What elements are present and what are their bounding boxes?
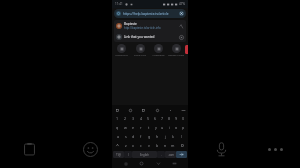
staticText: r: [140, 125, 142, 130]
button[interactable]: 2: [121, 114, 129, 123]
button[interactable]: Toolbar 0: [114, 107, 120, 113]
staticText: e: [132, 125, 135, 130]
button[interactable]: Backspace: [177, 141, 187, 150]
button[interactable]: Screenshots: [112, 44, 131, 57]
staticText: 11:41: [115, 2, 123, 6]
button[interactable]: Hide keyboard: [171, 160, 178, 167]
staticText: v: [148, 143, 150, 148]
staticText: y: [155, 125, 157, 130]
button[interactable]: Home: [138, 160, 145, 167]
staticText: /: [128, 153, 129, 157]
staticText: m: [171, 143, 175, 148]
button[interactable]: h: [153, 132, 161, 141]
button[interactable]: Toolbar 2: [140, 107, 146, 113]
button[interactable]: https://help.bapteste.tv/article: [114, 9, 186, 18]
button[interactable]: k: [169, 132, 177, 141]
staticText: j: [165, 134, 166, 139]
button[interactable]: [185, 45, 188, 54]
button[interactable]: Recents: [122, 160, 129, 167]
button[interactable]: u: [159, 123, 166, 132]
staticText: 1: [116, 116, 119, 121]
button[interactable]: m: [169, 141, 177, 150]
button[interactable]: Voice input: [208, 136, 234, 162]
button[interactable]: g: [145, 132, 153, 141]
staticText: 6: [154, 116, 157, 121]
button[interactable]: d: [129, 132, 137, 141]
button[interactable]: Space: [132, 151, 157, 158]
button[interactable]: .com: [165, 151, 176, 158]
staticText: o: [175, 125, 178, 130]
button[interactable]: Clear: [179, 11, 184, 16]
staticText: 5: [147, 116, 150, 121]
button[interactable]: w: [121, 123, 129, 132]
button[interactable]: 0: [180, 114, 187, 123]
staticText: x: [132, 143, 134, 148]
button[interactable]: x: [129, 141, 137, 150]
staticText: p: [182, 125, 185, 130]
button[interactable]: Clipboard: [18, 138, 40, 160]
staticText: 47%: [179, 2, 185, 6]
staticText: Share a link: [134, 54, 146, 57]
button[interactable]: More options: [262, 136, 288, 162]
button[interactable]: ?1@: [113, 151, 124, 158]
button[interactable]: Go: [176, 151, 187, 158]
button[interactable]: 8: [166, 114, 173, 123]
button[interactable]: 7: [159, 114, 166, 123]
button[interactable]: e: [129, 123, 137, 132]
button[interactable]: i: [166, 123, 173, 132]
button[interactable]: y: [152, 123, 159, 132]
staticText: t: [148, 125, 150, 130]
staticText: Accessibility: [152, 54, 165, 57]
staticText: q: [116, 125, 119, 130]
button[interactable]: Toolbar 4: [167, 107, 173, 113]
button[interactable]: p: [180, 123, 187, 132]
button[interactable]: Doodles I Draw: [167, 44, 185, 57]
staticText: .com: [168, 153, 174, 157]
button[interactable]: n: [161, 141, 169, 150]
staticText: g: [148, 134, 151, 139]
button[interactable]: o: [173, 123, 180, 132]
button[interactable]: 3: [129, 114, 137, 123]
button[interactable]: a: [115, 132, 122, 141]
button[interactable]: 6: [152, 114, 159, 123]
staticText: Doodles I Draw: [168, 54, 184, 57]
button[interactable]: Toolbar 5: [180, 107, 186, 113]
button[interactable]: c: [137, 141, 145, 150]
staticText: u: [161, 125, 164, 130]
staticText: z: [125, 143, 127, 148]
staticText: d: [132, 134, 135, 139]
button[interactable]: Toolbar 3: [154, 107, 160, 113]
button[interactable]: Shift: [113, 141, 122, 150]
button[interactable]: s: [122, 132, 129, 141]
button[interactable]: Preview: [178, 34, 184, 40]
staticText: f: [140, 134, 142, 139]
button[interactable]: t: [145, 123, 152, 132]
button[interactable]: r: [137, 123, 145, 132]
button[interactable]: Insert: [178, 23, 184, 29]
staticText: .: [161, 153, 162, 157]
staticText: 3: [132, 116, 135, 121]
staticText: 8: [168, 116, 171, 121]
button[interactable]: Emoji: [78, 137, 102, 161]
button[interactable]: q: [113, 123, 121, 132]
button[interactable]: 5: [145, 114, 152, 123]
button[interactable]: l: [177, 132, 185, 141]
staticText: k: [172, 134, 174, 139]
button[interactable]: Share a link: [131, 44, 149, 57]
button[interactable]: b: [153, 141, 161, 150]
button[interactable]: Link that you wanted: [114, 31, 186, 42]
button[interactable]: j: [161, 132, 169, 141]
button[interactable]: 1: [113, 114, 121, 123]
button[interactable]: 4: [137, 114, 145, 123]
button[interactable]: 9: [173, 114, 180, 123]
staticText: 2: [124, 116, 127, 121]
button[interactable]: f: [137, 132, 145, 141]
button[interactable]: z: [122, 141, 129, 150]
button[interactable]: Bapteste: [114, 20, 186, 31]
button[interactable]: Accessibility: [149, 44, 167, 57]
button[interactable]: Back: [155, 160, 162, 167]
button[interactable]: v: [145, 141, 153, 150]
button[interactable]: Toolbar 1: [127, 107, 133, 113]
button[interactable]: /: [124, 151, 132, 158]
